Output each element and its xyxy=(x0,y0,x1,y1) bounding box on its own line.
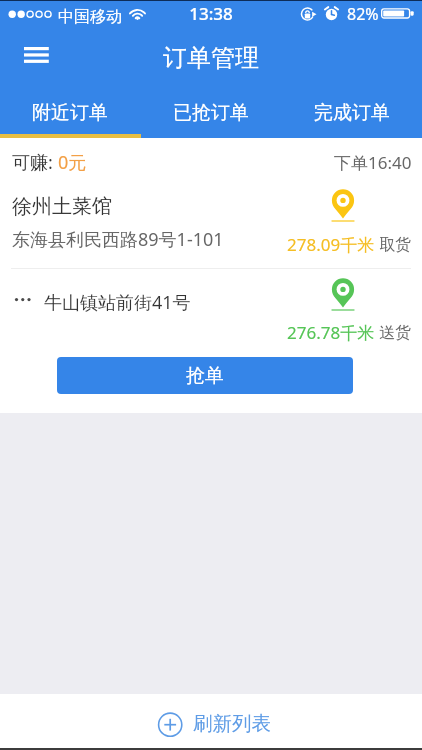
staticText: 中国移动 xyxy=(58,7,122,27)
button[interactable]: 刷新列表 xyxy=(0,694,422,750)
button[interactable]: 抢单 xyxy=(57,357,353,394)
staticText: 取货 xyxy=(375,233,412,255)
staticText: 徐州土菜馆 xyxy=(12,194,112,219)
staticText: 送货 xyxy=(375,321,412,343)
staticText: 0元 xyxy=(58,150,87,175)
staticText: 完成订单 xyxy=(314,101,390,125)
staticText: 13:38 xyxy=(0,2,422,25)
staticText: 订单管理 xyxy=(163,43,259,73)
staticText: 下单16:40 xyxy=(334,151,412,174)
staticText: 278.09千米 xyxy=(287,233,375,256)
staticText: 82% xyxy=(347,3,379,25)
button[interactable]: Menu xyxy=(8,33,65,77)
staticText: 抢单 xyxy=(186,364,224,388)
staticText: 附近订单 xyxy=(32,101,108,125)
staticText: 可赚: xyxy=(12,150,58,175)
staticText: 牛山镇站前街41号 xyxy=(44,290,191,315)
staticText: 276.78千米 xyxy=(287,321,375,344)
button[interactable]: 附近订单 xyxy=(0,86,140,138)
button[interactable]: 已抢订单 xyxy=(140,86,281,138)
staticText: 已抢订单 xyxy=(173,101,249,125)
staticText: 刷新列表 xyxy=(193,711,271,736)
button[interactable]: 完成订单 xyxy=(281,86,422,138)
staticText: 东海县利民西路89号1-101 xyxy=(12,227,224,252)
